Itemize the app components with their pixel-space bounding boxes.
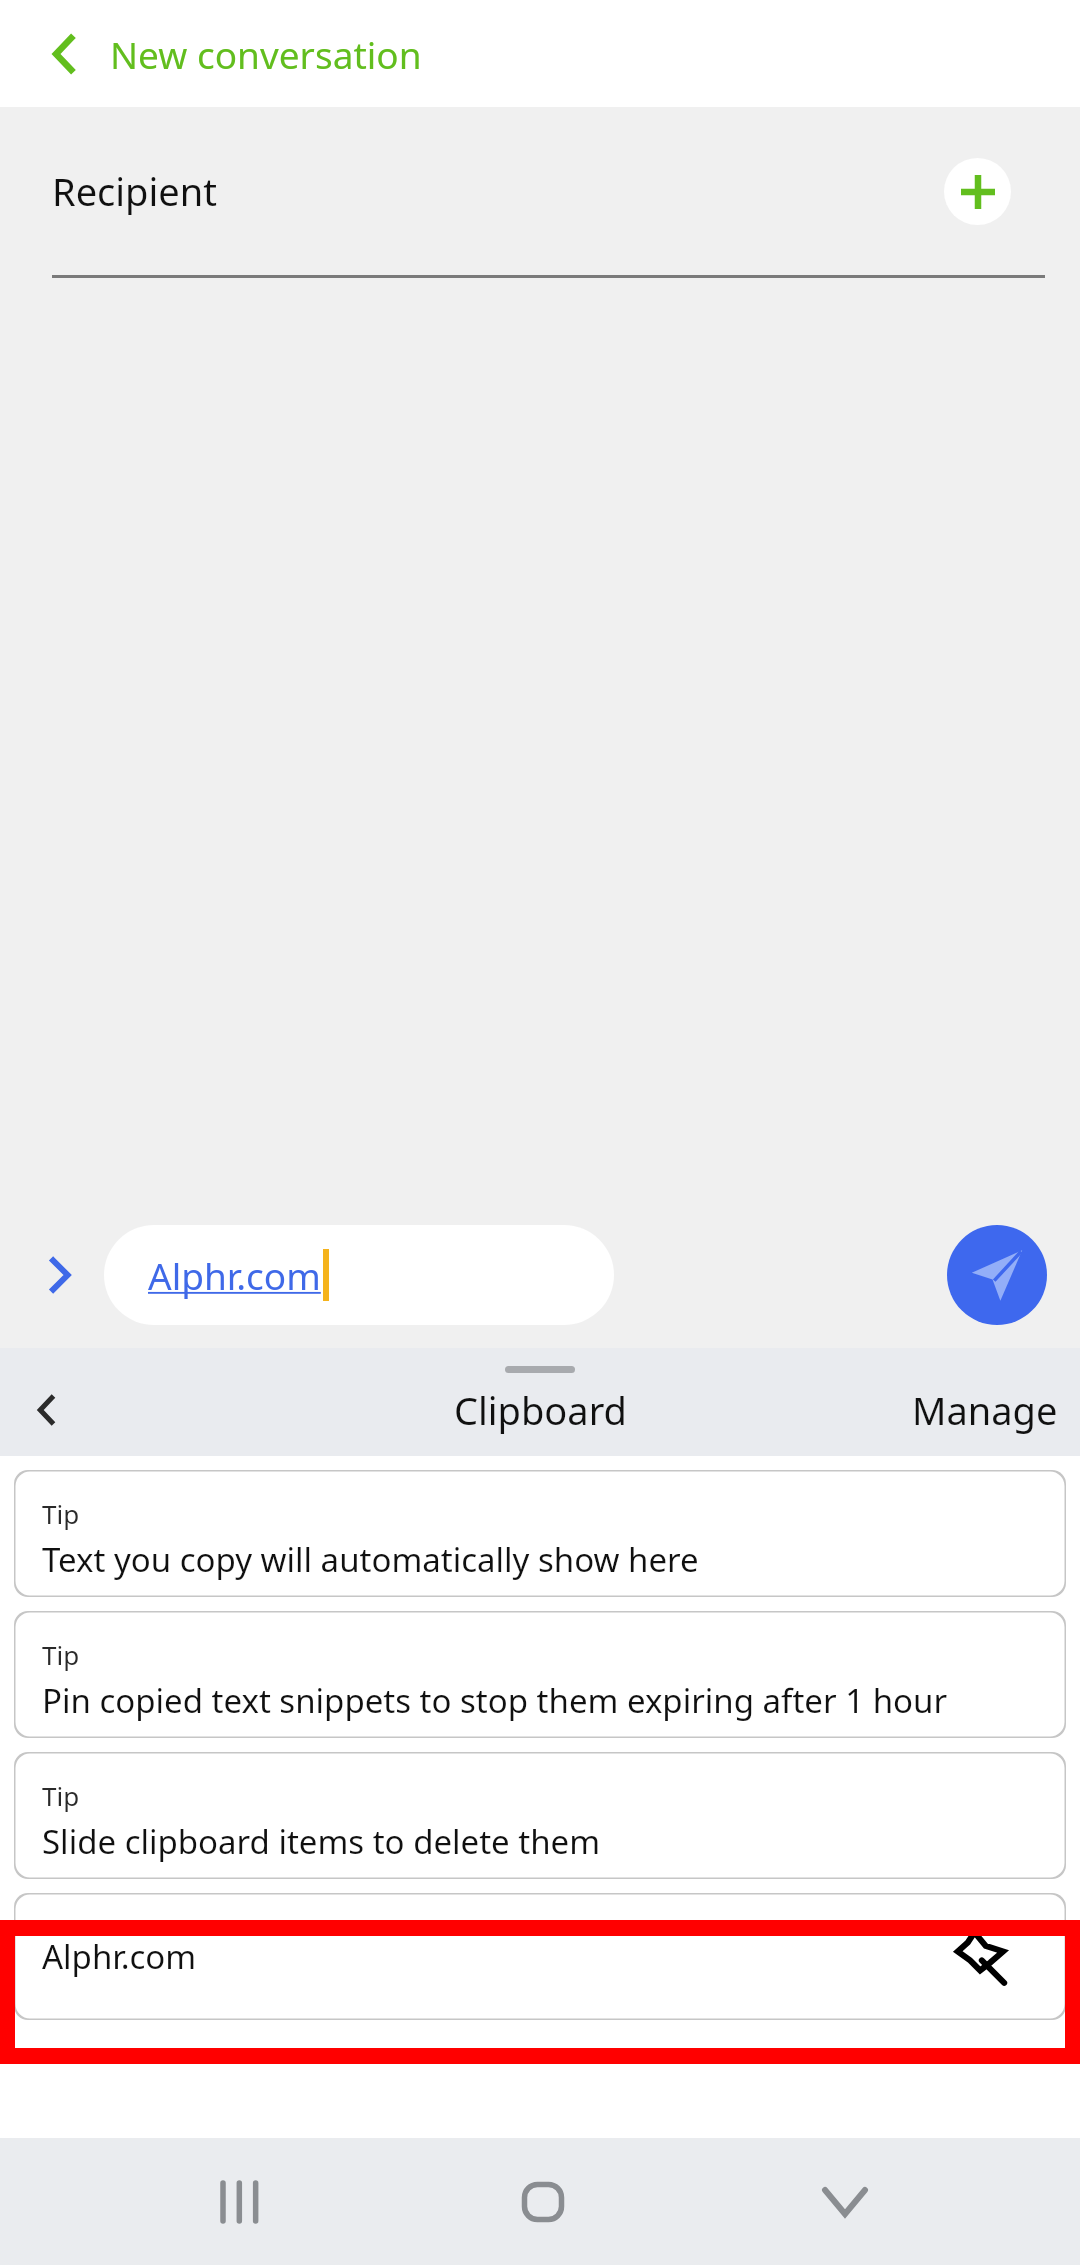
staticText: Slide clipboard items to delete them [42, 1819, 601, 1864]
button[interactable]: Home [483, 2142, 603, 2262]
staticText: Tip [42, 1496, 80, 1531]
button[interactable]: Back [14, 1378, 78, 1442]
button[interactable]: Alphr.com [14, 1893, 1066, 2020]
button[interactable]: Add recipient [944, 158, 1011, 225]
button[interactable]: Pin [942, 1920, 1016, 1994]
button[interactable]: Hide keyboard [785, 2142, 905, 2262]
staticText: Tip [42, 1778, 80, 1813]
staticText: Manage [912, 1384, 1058, 1436]
button[interactable]: Alphr.com [104, 1225, 614, 1325]
button[interactable]: Recent apps [181, 2142, 301, 2262]
staticText: Pin copied text snippets to stop them ex… [42, 1678, 948, 1723]
button[interactable]: Tip [14, 1752, 1066, 1879]
button[interactable]: Tip [14, 1611, 1066, 1738]
staticText: Alphr.com [148, 1250, 321, 1300]
staticText: Recipient [52, 165, 217, 217]
staticText: Tip [42, 1637, 80, 1672]
button[interactable]: Expand options [30, 1245, 90, 1305]
staticText: Text you copy will automatically show he… [42, 1537, 699, 1582]
staticText: Alphr.com [42, 1934, 197, 1979]
staticText: New conversation [110, 29, 422, 79]
button[interactable]: Send [947, 1225, 1047, 1325]
button[interactable]: Tip [14, 1470, 1066, 1597]
staticText: Clipboard [454, 1384, 627, 1436]
button[interactable]: Manage [890, 1376, 1080, 1444]
button[interactable]: Navigate up [26, 16, 102, 92]
